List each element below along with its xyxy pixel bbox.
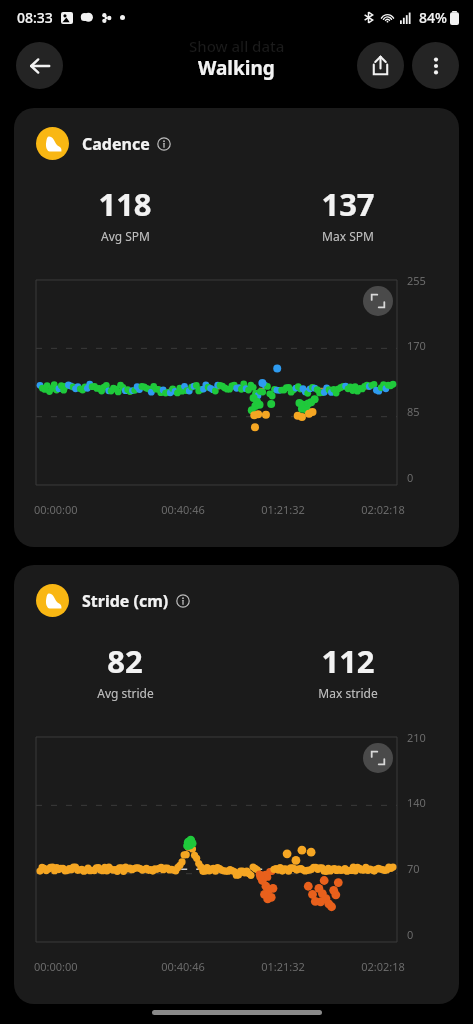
staticText: Show all data <box>189 36 285 56</box>
button[interactable]: Expand chart <box>363 286 393 316</box>
staticText: 140 <box>407 795 426 810</box>
button[interactable]: Stride (cm) <box>14 565 459 1004</box>
staticText: 118 <box>98 183 152 225</box>
staticText: 00:00:00 <box>34 502 133 517</box>
staticText: 170 <box>407 338 426 353</box>
staticText: 85 <box>407 404 420 419</box>
button[interactable]: Info <box>175 593 190 608</box>
button[interactable]: Info <box>156 136 171 151</box>
button[interactable]: Cadence <box>14 108 459 547</box>
staticText: Avg stride <box>97 685 154 701</box>
staticText: Stride (cm) <box>82 590 169 612</box>
staticText: 210 <box>407 730 426 745</box>
staticText: Walking <box>198 55 275 81</box>
staticText: 0 <box>407 470 414 485</box>
staticText: Cadence <box>82 133 150 155</box>
staticText: Avg SPM <box>101 228 150 244</box>
staticText: 01:21:32 <box>233 959 333 974</box>
staticText: 0 <box>407 927 414 942</box>
staticText: 255 <box>407 273 426 288</box>
button[interactable]: More options <box>412 42 459 89</box>
staticText: Max stride <box>318 685 378 701</box>
staticText: 01:21:32 <box>233 502 333 517</box>
button[interactable]: Back <box>16 42 63 89</box>
staticText: 00:40:46 <box>133 502 233 517</box>
staticText: 70 <box>407 861 420 876</box>
staticText: 00:40:46 <box>133 959 233 974</box>
staticText: 112 <box>321 640 375 682</box>
staticText: 00:00:00 <box>34 959 133 974</box>
staticText: Max SPM <box>322 228 374 244</box>
staticText: 82 <box>107 640 143 682</box>
staticText: 02:02:18 <box>333 502 433 517</box>
staticText: 02:02:18 <box>333 959 433 974</box>
staticText: 84% <box>419 8 447 27</box>
button[interactable]: Share <box>357 42 404 89</box>
button[interactable]: Expand chart <box>363 743 393 773</box>
staticText: 08:33 <box>17 8 53 27</box>
staticText: 137 <box>321 183 375 225</box>
